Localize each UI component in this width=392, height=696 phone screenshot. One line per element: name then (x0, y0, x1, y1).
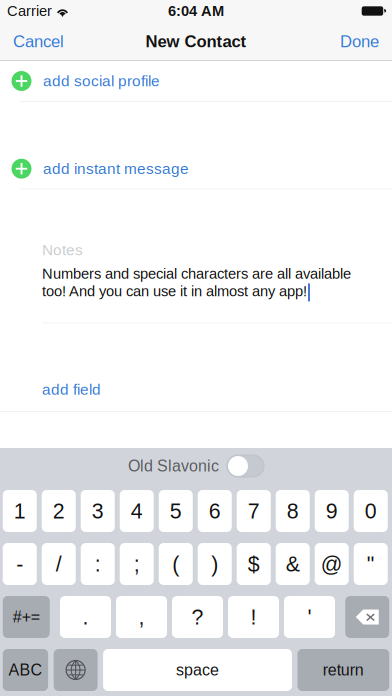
staticText: Numbers and special characters are all a… (42, 265, 351, 299)
button[interactable]: Cancel (2, 22, 75, 61)
button[interactable]: ) (198, 543, 232, 585)
button[interactable]: " (354, 543, 388, 585)
button[interactable]: ABC (3, 649, 48, 691)
staticText: return (323, 661, 364, 679)
staticText: 1 (14, 499, 26, 523)
staticText: New Contact (145, 32, 246, 51)
button[interactable]: ; (120, 543, 154, 585)
staticText: 6:04 AM (168, 3, 224, 19)
staticText: 0 (365, 499, 377, 523)
staticText: . (82, 605, 88, 629)
button[interactable]: ( (159, 543, 193, 585)
staticText: Notes (42, 241, 83, 258)
staticText: 3 (92, 499, 104, 523)
staticText: space (176, 661, 219, 679)
staticText: 4 (131, 499, 143, 523)
staticText: add instant message (43, 160, 189, 177)
staticText: 2 (53, 499, 65, 523)
staticText: add field (42, 381, 101, 398)
staticText: Cancel (13, 32, 64, 51)
button[interactable]: 9 (315, 490, 349, 532)
button[interactable]: ! (228, 596, 279, 638)
button[interactable]: 0 (354, 490, 388, 532)
staticText: Old Slavonic (128, 457, 219, 475)
staticText: " (367, 552, 375, 576)
button[interactable]: $ (237, 543, 271, 585)
button[interactable]: , (116, 596, 167, 638)
staticText: 6 (209, 499, 221, 523)
button[interactable]: : (81, 543, 115, 585)
staticText: & (286, 552, 300, 576)
button[interactable]: 5 (159, 490, 193, 532)
button[interactable]: 3 (81, 490, 115, 532)
button[interactable]: Done (329, 22, 390, 61)
button[interactable]: 8 (276, 490, 310, 532)
staticText: ' (307, 605, 311, 629)
staticText: 5 (170, 499, 182, 523)
button[interactable]: add instant message (0, 149, 392, 189)
staticText: ? (191, 605, 203, 629)
button[interactable]: & (276, 543, 310, 585)
staticText: ; (134, 552, 140, 576)
staticText: #+= (13, 608, 40, 626)
staticText: : (95, 552, 101, 576)
staticText: 9 (326, 499, 338, 523)
staticText: / (56, 552, 62, 576)
staticText: , (138, 605, 144, 629)
button[interactable]: Old Slavonic keyboard toggle (227, 455, 264, 477)
button[interactable]: 4 (120, 490, 154, 532)
staticText: Carrier (7, 3, 52, 19)
button[interactable]: #+= (3, 596, 50, 638)
staticText: $ (248, 552, 260, 576)
button[interactable]: space (103, 649, 292, 691)
staticText: - (16, 552, 23, 576)
staticText: add social profile (43, 72, 160, 89)
button[interactable]: add social profile (0, 61, 392, 102)
button[interactable]: ' (284, 596, 335, 638)
button[interactable]: Delete (345, 596, 389, 638)
staticText: 7 (248, 499, 260, 523)
button[interactable]: Next keyboard (54, 649, 98, 691)
button[interactable]: @ (315, 543, 349, 585)
button[interactable]: 2 (42, 490, 76, 532)
staticText: ABC (8, 661, 42, 679)
button[interactable]: . (60, 596, 111, 638)
button[interactable]: / (42, 543, 76, 585)
button[interactable]: ? (172, 596, 223, 638)
staticText: ) (211, 552, 218, 576)
button[interactable]: 1 (3, 490, 37, 532)
button[interactable]: - (3, 543, 37, 585)
button[interactable]: 6 (198, 490, 232, 532)
staticText: 8 (287, 499, 299, 523)
staticText: ! (250, 605, 256, 629)
staticText: @ (321, 552, 343, 576)
button[interactable]: add field (0, 367, 392, 412)
button[interactable]: return (297, 649, 389, 691)
button[interactable]: 7 (237, 490, 271, 532)
staticText: Done (340, 32, 379, 51)
staticText: ( (172, 552, 179, 576)
